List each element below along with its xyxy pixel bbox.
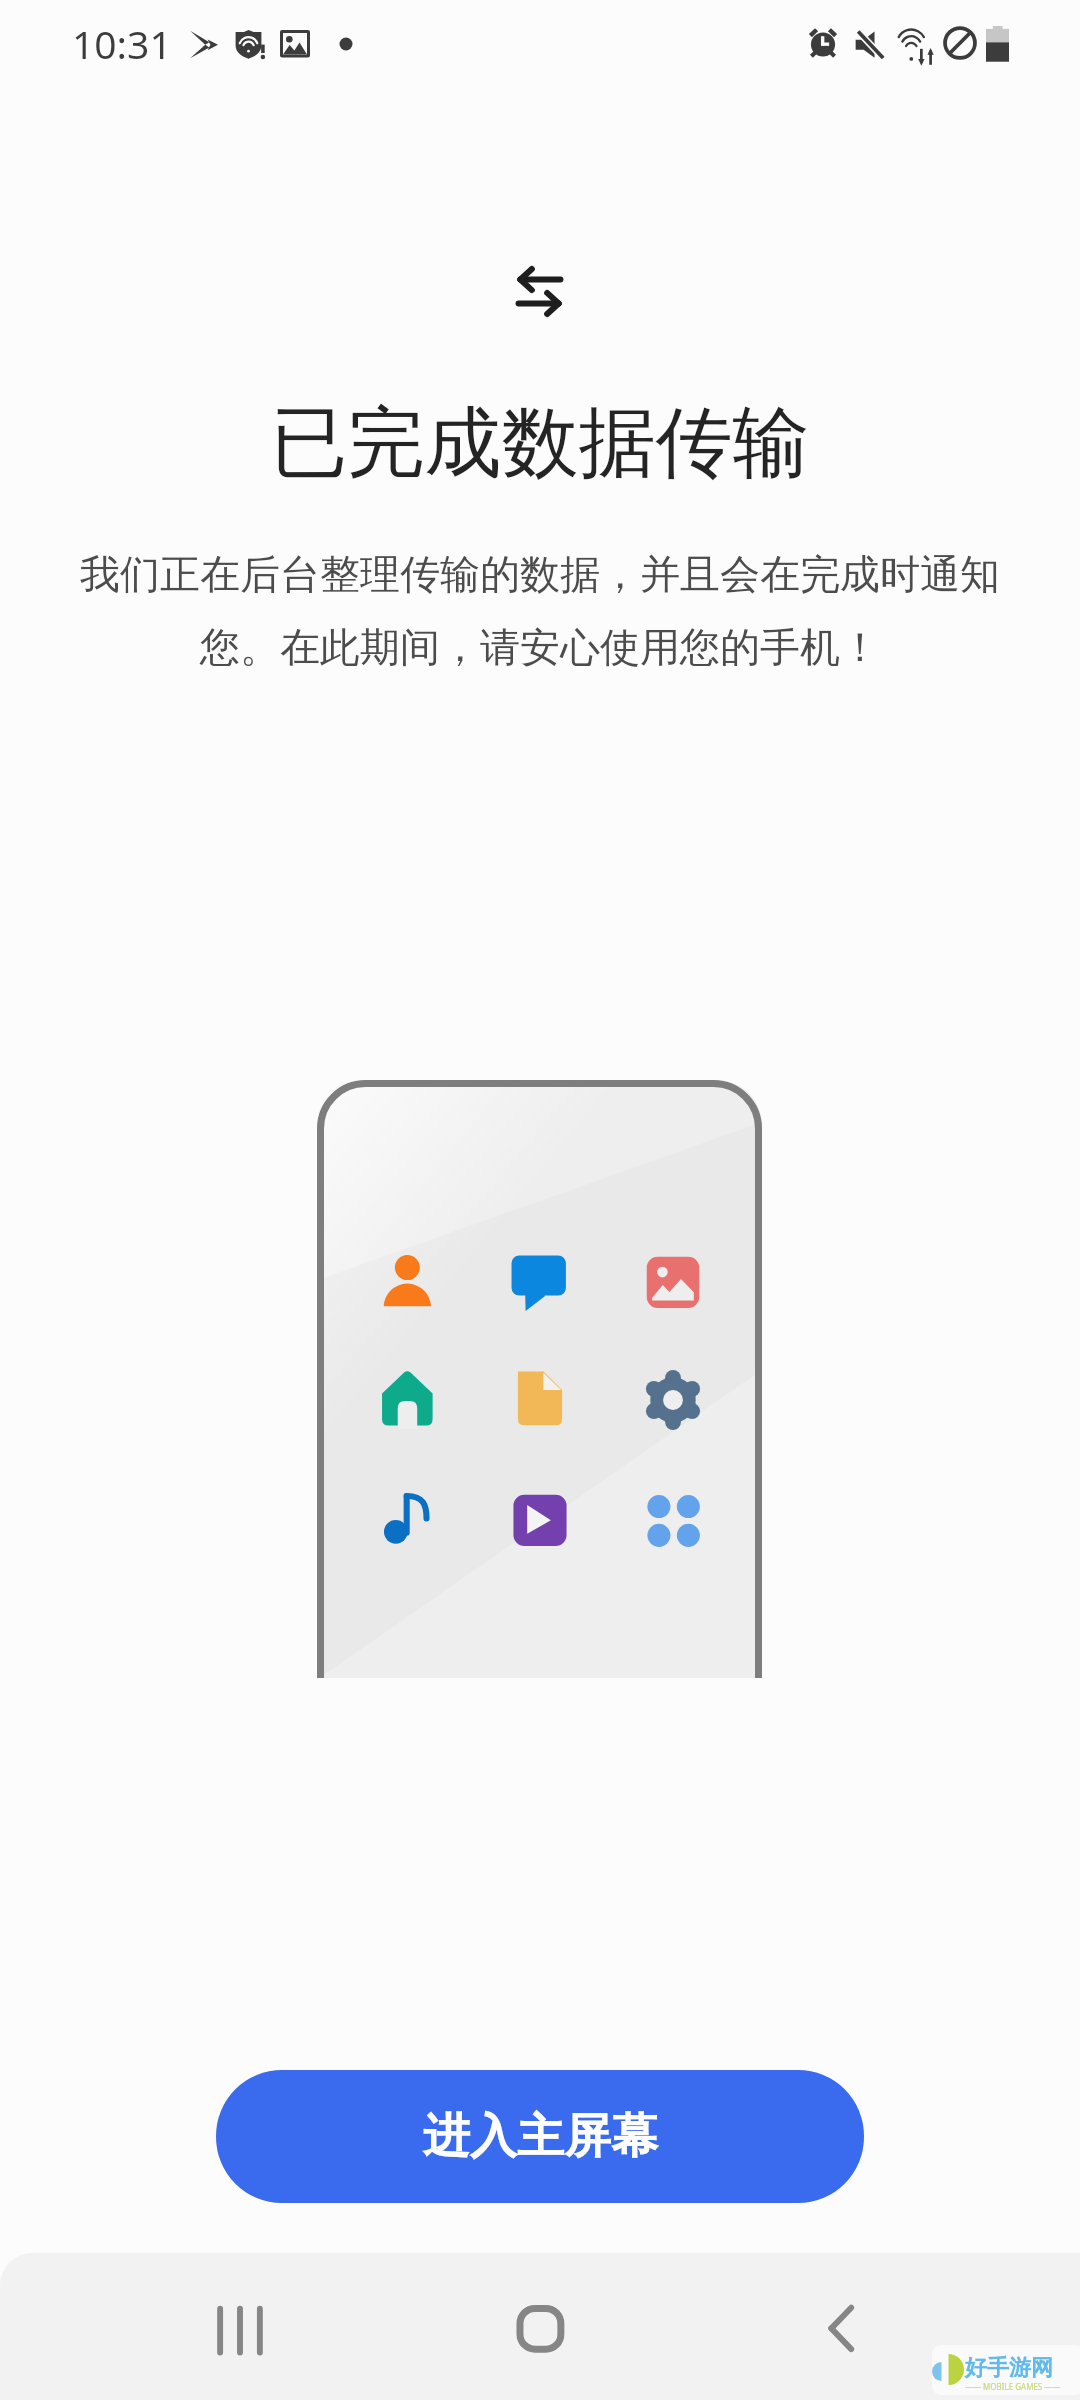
staticText: 好手游网 [965,2354,1053,2382]
button[interactable]: Back [780,2253,900,2400]
staticText: 我们正在后台整理传输的数据，并且会在完成时通知您。在此期间，请安心使用您的手机！ [78,549,1002,672]
button[interactable]: Recents [180,2253,300,2400]
staticText: 已完成数据传输 [0,395,1080,492]
button[interactable]: 进入主屏幕 [216,2070,864,2203]
staticText: 10:31 [72,17,172,70]
button[interactable]: Home [480,2253,600,2400]
staticText: —— MOBILE GAMES —— [965,2381,1061,2392]
staticText: 进入主屏幕 [423,2107,658,2166]
